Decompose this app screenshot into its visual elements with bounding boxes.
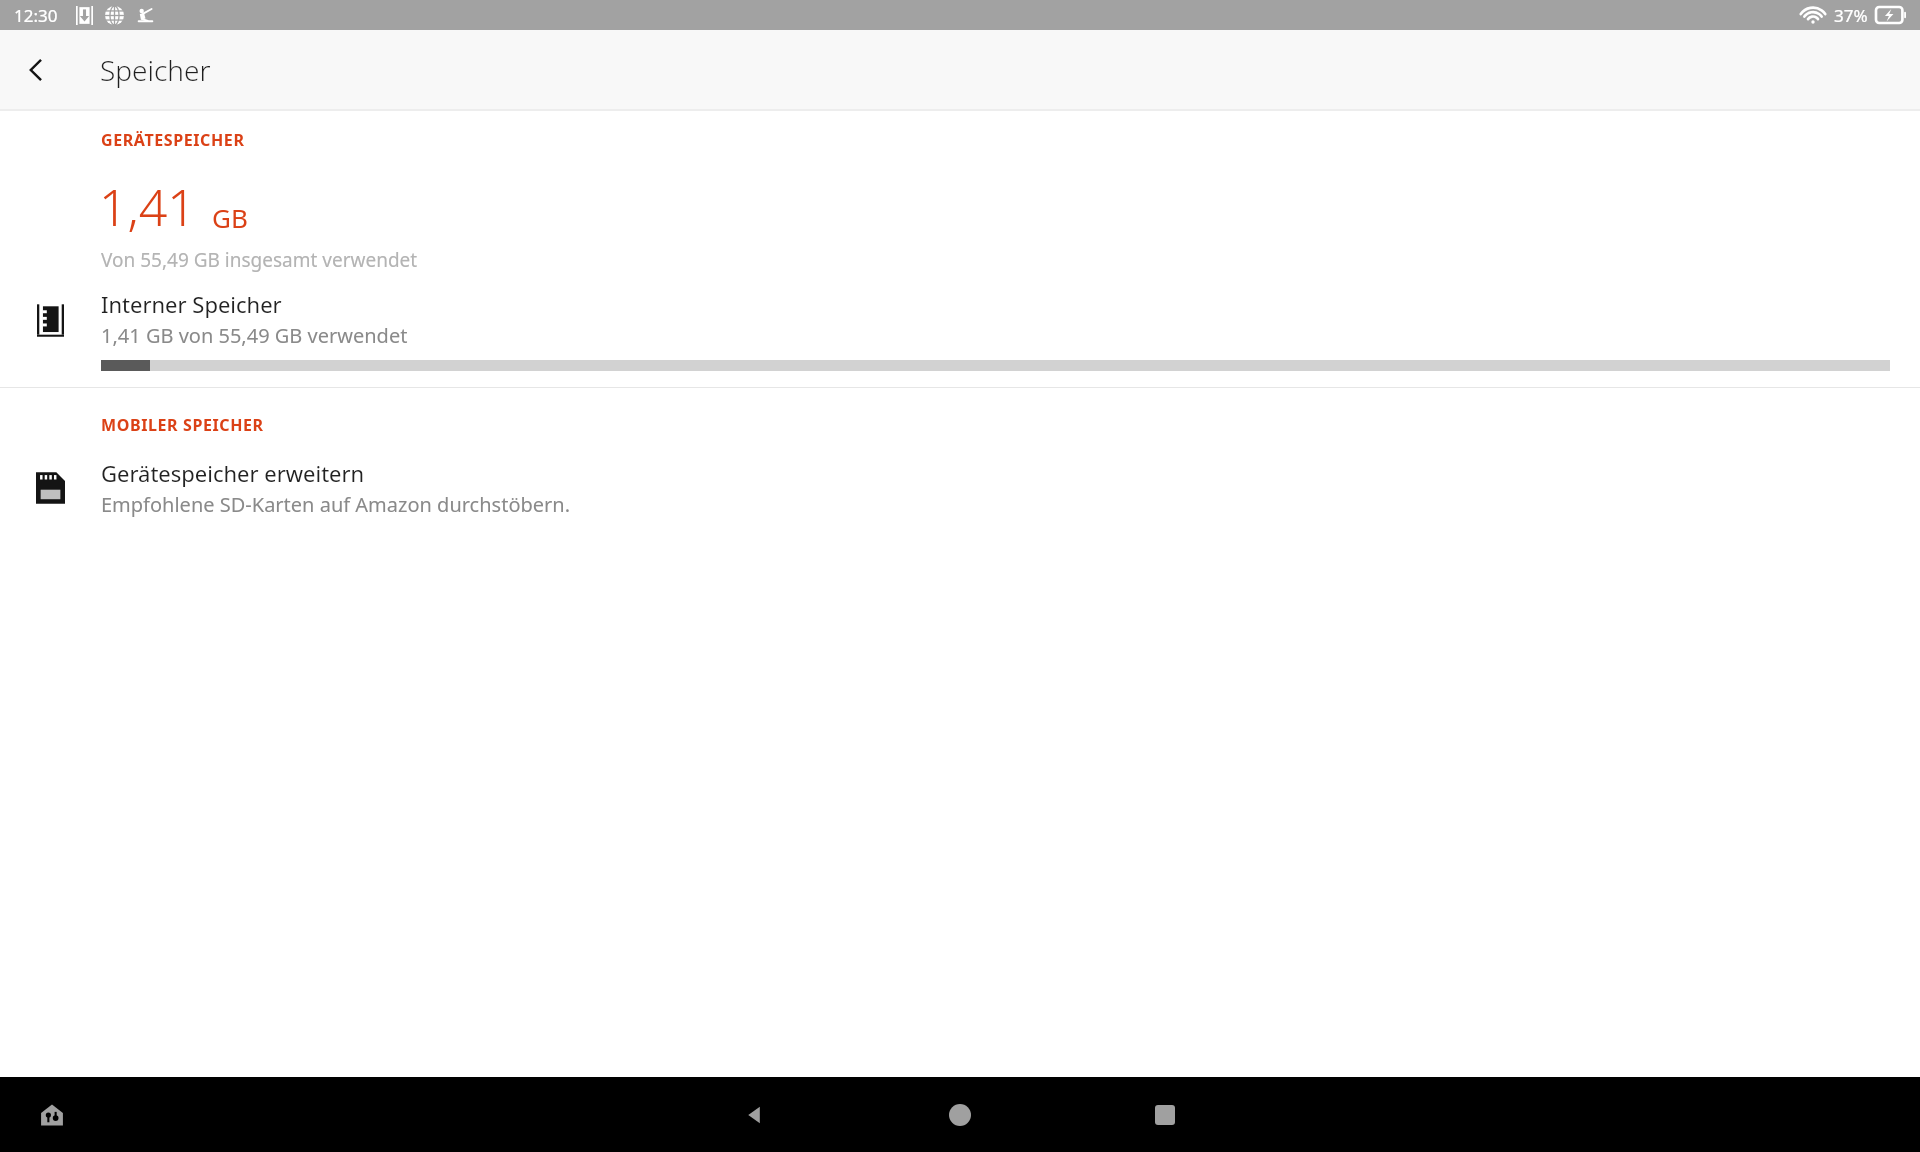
staticText: 12:30 <box>14 4 58 27</box>
staticText: Speicher <box>100 51 211 89</box>
staticText: 1,41 GB von 55,49 GB verwendet <box>101 322 408 349</box>
staticText: Empfohlene SD-Karten auf Amazon durchstö… <box>101 491 571 518</box>
button[interactable]: Zurück <box>8 42 64 98</box>
button[interactable]: Gerätespeicher erweitern <box>0 458 1920 518</box>
button[interactable]: Startbildschirm <box>920 1077 1000 1152</box>
button[interactable]: Interner Speicher <box>0 289 1920 371</box>
staticText: Gerätespeicher erweitern <box>101 458 365 488</box>
staticText: GB <box>212 200 248 235</box>
button[interactable]: Übersicht <box>1125 1077 1205 1152</box>
staticText: MOBILER SPEICHER <box>101 414 264 436</box>
button[interactable]: Zurück <box>715 1077 795 1152</box>
button[interactable]: Eingabemethode <box>26 1089 78 1141</box>
staticText: GERÄTESPEICHER <box>101 129 245 151</box>
staticText: 37% <box>1834 4 1868 27</box>
staticText: Interner Speicher <box>101 289 282 319</box>
staticText: Von 55,49 GB insgesamt verwendet <box>101 247 418 273</box>
staticText: 1,41 <box>99 173 196 241</box>
